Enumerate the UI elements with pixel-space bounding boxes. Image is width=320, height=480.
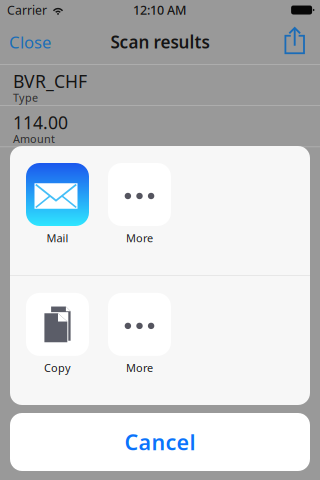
staticText: 114.00 — [13, 110, 68, 134]
staticText: 12:10 AM — [133, 1, 187, 19]
staticText: Type — [13, 90, 38, 105]
button[interactable]: Mail — [26, 163, 89, 255]
staticText: Mail — [46, 230, 68, 245]
staticText: Cancel — [124, 427, 195, 457]
button[interactable]: Share — [270, 20, 320, 64]
button[interactable]: Close — [0, 20, 63, 64]
staticText: More — [126, 360, 153, 375]
button[interactable]: Copy — [26, 293, 89, 385]
staticText: BVR_CHF — [13, 69, 87, 93]
staticText: Amount — [13, 131, 55, 146]
staticText: Close — [9, 31, 51, 53]
staticText: Carrier — [7, 2, 47, 18]
staticText: More — [126, 230, 153, 245]
button[interactable]: More — [108, 163, 171, 255]
button[interactable]: Cancel — [10, 413, 310, 471]
button[interactable]: More — [108, 293, 171, 385]
staticText: Scan results — [110, 30, 209, 54]
staticText: Copy — [44, 360, 71, 375]
